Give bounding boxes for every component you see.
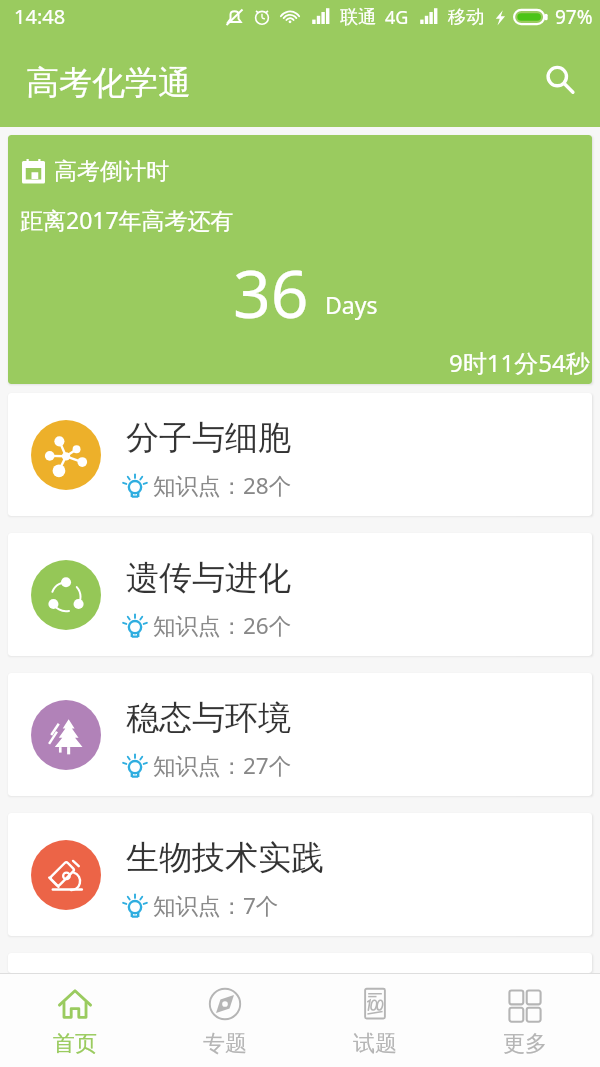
staticText: 遗传与进化 (126, 557, 291, 599)
button[interactable]: 遗传与进化 (8, 533, 592, 656)
staticText: 试题 (353, 1030, 397, 1058)
staticText: 36 (233, 247, 309, 337)
staticText: 14:48 (14, 3, 66, 30)
staticText: 知识点：27个 (153, 750, 292, 781)
staticText: 知识点：26个 (153, 610, 292, 641)
staticText: 知识点：28个 (153, 470, 292, 501)
button[interactable]: 首页 (0, 974, 150, 1067)
staticText: 4G (385, 5, 409, 30)
staticText: 稳态与环境 (126, 697, 291, 739)
staticText: 移动 (448, 6, 484, 29)
staticText: 知识点：7个 (153, 890, 279, 921)
staticText: 生物技术实践 (126, 837, 324, 879)
staticText: 分子与细胞 (126, 417, 291, 459)
button[interactable]: 分子与细胞 (8, 393, 592, 516)
button[interactable]: 试题 (300, 974, 450, 1067)
staticText: 高考倒计时 (54, 157, 169, 186)
staticText: 首页 (53, 1030, 97, 1058)
button[interactable]: 专题 (150, 974, 300, 1067)
staticText: Days (325, 289, 378, 320)
button[interactable]: 生物技术实践 (8, 813, 592, 936)
staticText: 97% (555, 4, 593, 30)
button[interactable]: 更多 (450, 974, 600, 1067)
button[interactable]: 稳态与环境 (8, 673, 592, 796)
staticText: 距离2017年高考还有 (20, 204, 234, 235)
button[interactable]: Search (536, 56, 584, 104)
staticText: 专题 (203, 1030, 247, 1058)
staticText: 联通 (340, 6, 376, 29)
staticText: 更多 (503, 1030, 547, 1058)
staticText: 高考化学通 (26, 62, 191, 104)
staticText: 9时11分54秒 (449, 346, 590, 379)
